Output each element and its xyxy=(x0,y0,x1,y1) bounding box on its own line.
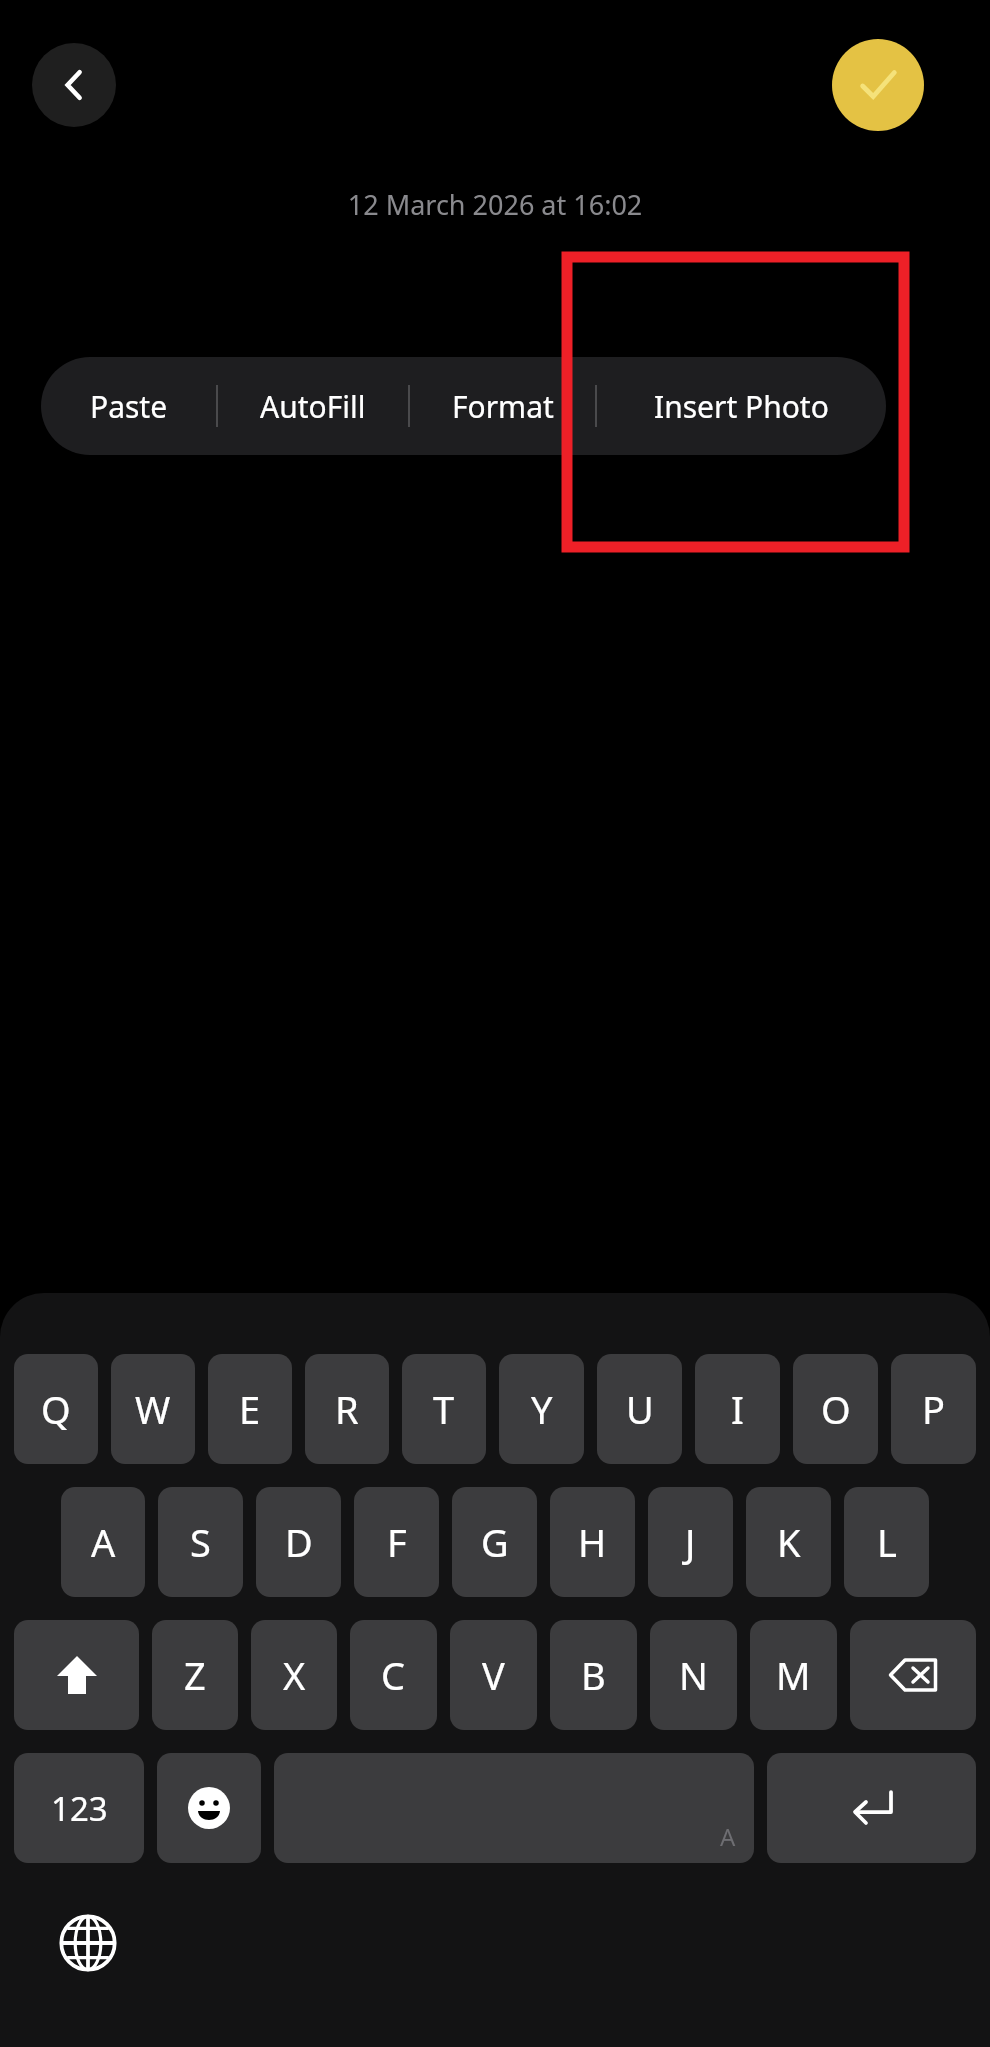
button[interactable]: N xyxy=(650,1620,737,1730)
staticText: Z xyxy=(184,1649,206,1701)
button[interactable]: Shift xyxy=(14,1620,139,1730)
staticText: I xyxy=(731,1383,744,1435)
staticText: R xyxy=(335,1383,359,1435)
staticText: G xyxy=(481,1516,509,1568)
button[interactable]: U xyxy=(597,1354,682,1464)
staticText: A xyxy=(91,1516,116,1568)
button[interactable]: Q xyxy=(14,1354,98,1464)
button[interactable]: P xyxy=(891,1354,976,1464)
staticText: A xyxy=(720,1820,736,1853)
staticText: C xyxy=(381,1649,406,1701)
button[interactable]: S xyxy=(158,1487,243,1597)
staticText: Q xyxy=(41,1383,71,1435)
button[interactable]: Emoji xyxy=(157,1753,261,1863)
button[interactable]: Done xyxy=(832,39,924,131)
button[interactable]: D xyxy=(256,1487,341,1597)
staticText: Format xyxy=(452,386,554,427)
button[interactable]: M xyxy=(750,1620,837,1730)
button[interactable]: Back xyxy=(32,43,116,127)
staticText: Paste xyxy=(90,386,168,427)
button[interactable]: Paste xyxy=(41,357,216,455)
button[interactable]: Change keyboard xyxy=(48,1903,128,1983)
staticText: P xyxy=(922,1383,945,1435)
button[interactable]: A xyxy=(61,1487,145,1597)
button[interactable]: R xyxy=(305,1354,389,1464)
button[interactable]: Return xyxy=(767,1753,976,1863)
button[interactable]: G xyxy=(452,1487,537,1597)
staticText: V xyxy=(482,1649,505,1701)
staticText: X xyxy=(283,1649,306,1701)
staticText: W xyxy=(135,1383,171,1435)
staticText: E xyxy=(239,1383,261,1435)
button[interactable]: Backspace xyxy=(850,1620,976,1730)
button[interactable]: B xyxy=(550,1620,637,1730)
button[interactable]: O xyxy=(793,1354,878,1464)
button[interactable]: Y xyxy=(499,1354,584,1464)
button[interactable]: C xyxy=(350,1620,437,1730)
button[interactable]: H xyxy=(550,1487,635,1597)
button[interactable]: L xyxy=(844,1487,929,1597)
button[interactable]: F xyxy=(354,1487,439,1597)
button[interactable]: 123 xyxy=(14,1753,144,1863)
button[interactable]: I xyxy=(695,1354,780,1464)
staticText: J xyxy=(685,1516,696,1568)
button[interactable]: W xyxy=(111,1354,195,1464)
staticText: Insert Photo xyxy=(654,386,829,427)
staticText: B xyxy=(581,1649,606,1701)
button[interactable]: X xyxy=(251,1620,337,1730)
staticText: S xyxy=(190,1516,211,1568)
staticText: 123 xyxy=(51,1786,108,1831)
staticText: H xyxy=(578,1516,607,1568)
staticText: D xyxy=(285,1516,313,1568)
button[interactable]: Z xyxy=(152,1620,238,1730)
button[interactable]: K xyxy=(746,1487,831,1597)
staticText: AutoFill xyxy=(260,386,366,427)
staticText: 12 March 2026 at 16:02 xyxy=(0,186,990,223)
staticText: U xyxy=(626,1383,654,1435)
button[interactable]: T xyxy=(402,1354,486,1464)
button[interactable]: Format xyxy=(410,357,595,455)
staticText: Y xyxy=(531,1383,553,1435)
staticText: F xyxy=(387,1516,407,1568)
staticText: N xyxy=(679,1649,708,1701)
staticText: O xyxy=(821,1383,851,1435)
button[interactable]: AutoFill xyxy=(218,357,408,455)
button[interactable]: Insert Photo xyxy=(597,357,886,455)
staticText: L xyxy=(877,1516,897,1568)
staticText: M xyxy=(776,1649,811,1701)
staticText: K xyxy=(777,1516,801,1568)
button[interactable]: E xyxy=(208,1354,292,1464)
button[interactable]: J xyxy=(648,1487,733,1597)
button[interactable]: V xyxy=(450,1620,537,1730)
staticText: T xyxy=(433,1383,455,1435)
